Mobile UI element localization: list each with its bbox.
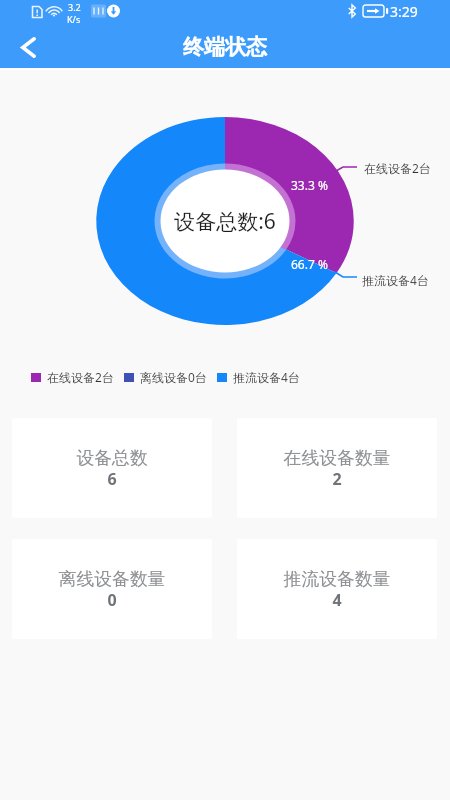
- staticText: 离线设备0台: [140, 369, 207, 385]
- staticText: 在线设备数量: [237, 447, 437, 469]
- staticText: 33.3 %: [291, 177, 328, 193]
- staticText: 推流设备4台: [362, 272, 429, 288]
- staticText: K/s: [67, 13, 81, 23]
- staticText: 终端状态: [0, 34, 450, 60]
- staticText: 2: [237, 468, 437, 490]
- staticText: 3.2: [68, 1, 81, 13]
- staticText: 66.7 %: [291, 256, 328, 272]
- staticText: 设备总数: [12, 447, 212, 469]
- staticText: 在线设备2台: [364, 160, 431, 176]
- button[interactable]: 推流设备数量: [237, 539, 437, 639]
- button[interactable]: 在线设备数量: [237, 418, 437, 518]
- staticText: 6: [12, 468, 212, 490]
- button[interactable]: 设备总数: [12, 418, 212, 518]
- staticText: 0: [12, 589, 212, 611]
- staticText: 在线设备2台: [47, 369, 114, 385]
- staticText: 设备总数:6: [0, 207, 450, 236]
- staticText: 推流设备4台: [233, 369, 300, 385]
- staticText: 离线设备数量: [12, 568, 212, 590]
- staticText: 4: [237, 589, 437, 611]
- staticText: 3:29: [390, 2, 418, 21]
- button[interactable]: Back: [11, 30, 45, 64]
- button[interactable]: 离线设备数量: [12, 539, 212, 639]
- staticText: 推流设备数量: [237, 568, 437, 590]
